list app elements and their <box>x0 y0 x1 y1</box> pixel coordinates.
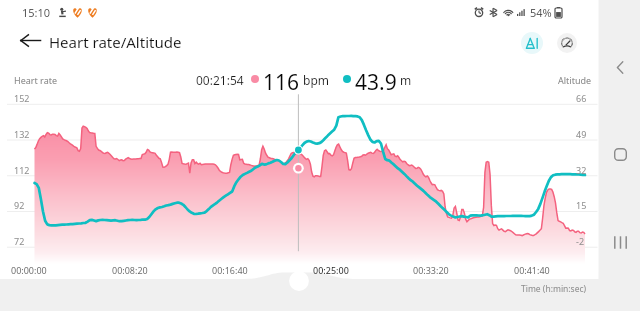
staticText: 66 <box>576 92 587 104</box>
staticText: 49 <box>576 128 587 140</box>
staticText: 54% <box>530 5 552 19</box>
staticText: 132 <box>14 128 30 140</box>
button[interactable]: Pace settings <box>557 33 577 53</box>
staticText: 15:10 <box>22 5 51 19</box>
staticText: Heart rate <box>14 74 58 86</box>
staticText: Altitude <box>558 74 592 86</box>
staticText: 43.9 <box>355 68 397 90</box>
staticText: 00:21:54 <box>196 72 244 88</box>
staticText: 152 <box>14 92 30 104</box>
staticText: Heart rate/Altitude <box>49 32 182 52</box>
staticText: -2 <box>576 235 585 247</box>
staticText: 32 <box>576 164 587 176</box>
button[interactable]: Home <box>607 141 633 167</box>
button[interactable]: Back <box>607 54 633 80</box>
staticText: 00:00:00 <box>11 264 47 276</box>
staticText: 112 <box>14 164 30 176</box>
staticText: 00:41:40 <box>514 264 550 276</box>
button[interactable]: Recent apps <box>607 229 633 255</box>
staticText: 00:16:40 <box>212 264 248 276</box>
staticText: 15 <box>576 199 587 211</box>
staticText: bpm <box>303 72 329 88</box>
staticText: Time (h:min:sec) <box>521 283 587 295</box>
staticText: 72 <box>14 235 25 247</box>
button[interactable]: Back <box>17 27 44 54</box>
staticText: m <box>400 72 412 88</box>
staticText: 116 <box>263 68 300 90</box>
button[interactable]: AI insight <box>521 32 543 54</box>
staticText: 92 <box>14 199 25 211</box>
staticText: 00:08:20 <box>112 264 148 276</box>
staticText: 00:25:00 <box>313 264 349 276</box>
staticText: 00:33:20 <box>413 264 449 276</box>
